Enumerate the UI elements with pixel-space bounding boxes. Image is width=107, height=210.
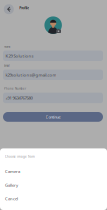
staticText: Profile bbox=[19, 6, 29, 10]
staticText: k29solutions@gmail.com bbox=[5, 72, 56, 78]
staticText: Email bbox=[4, 64, 10, 67]
staticText: +91 9634767580 bbox=[5, 95, 32, 101]
staticText: Name bbox=[4, 45, 11, 48]
staticText: Camera bbox=[5, 169, 20, 174]
staticText: Phone Number bbox=[4, 87, 26, 91]
staticText: Choose image from bbox=[5, 154, 35, 158]
button[interactable]: Back bbox=[4, 4, 14, 14]
staticText: K29 Solutions bbox=[5, 53, 33, 59]
staticText: Gallery bbox=[5, 182, 18, 188]
button[interactable]: Cancel bbox=[0, 192, 107, 205]
button[interactable]: Camera bbox=[0, 165, 107, 178]
staticText: Continue bbox=[45, 114, 60, 120]
button[interactable]: Gallery bbox=[0, 178, 107, 192]
button[interactable]: Continue bbox=[3, 112, 103, 122]
staticText: Cancel bbox=[5, 196, 18, 201]
